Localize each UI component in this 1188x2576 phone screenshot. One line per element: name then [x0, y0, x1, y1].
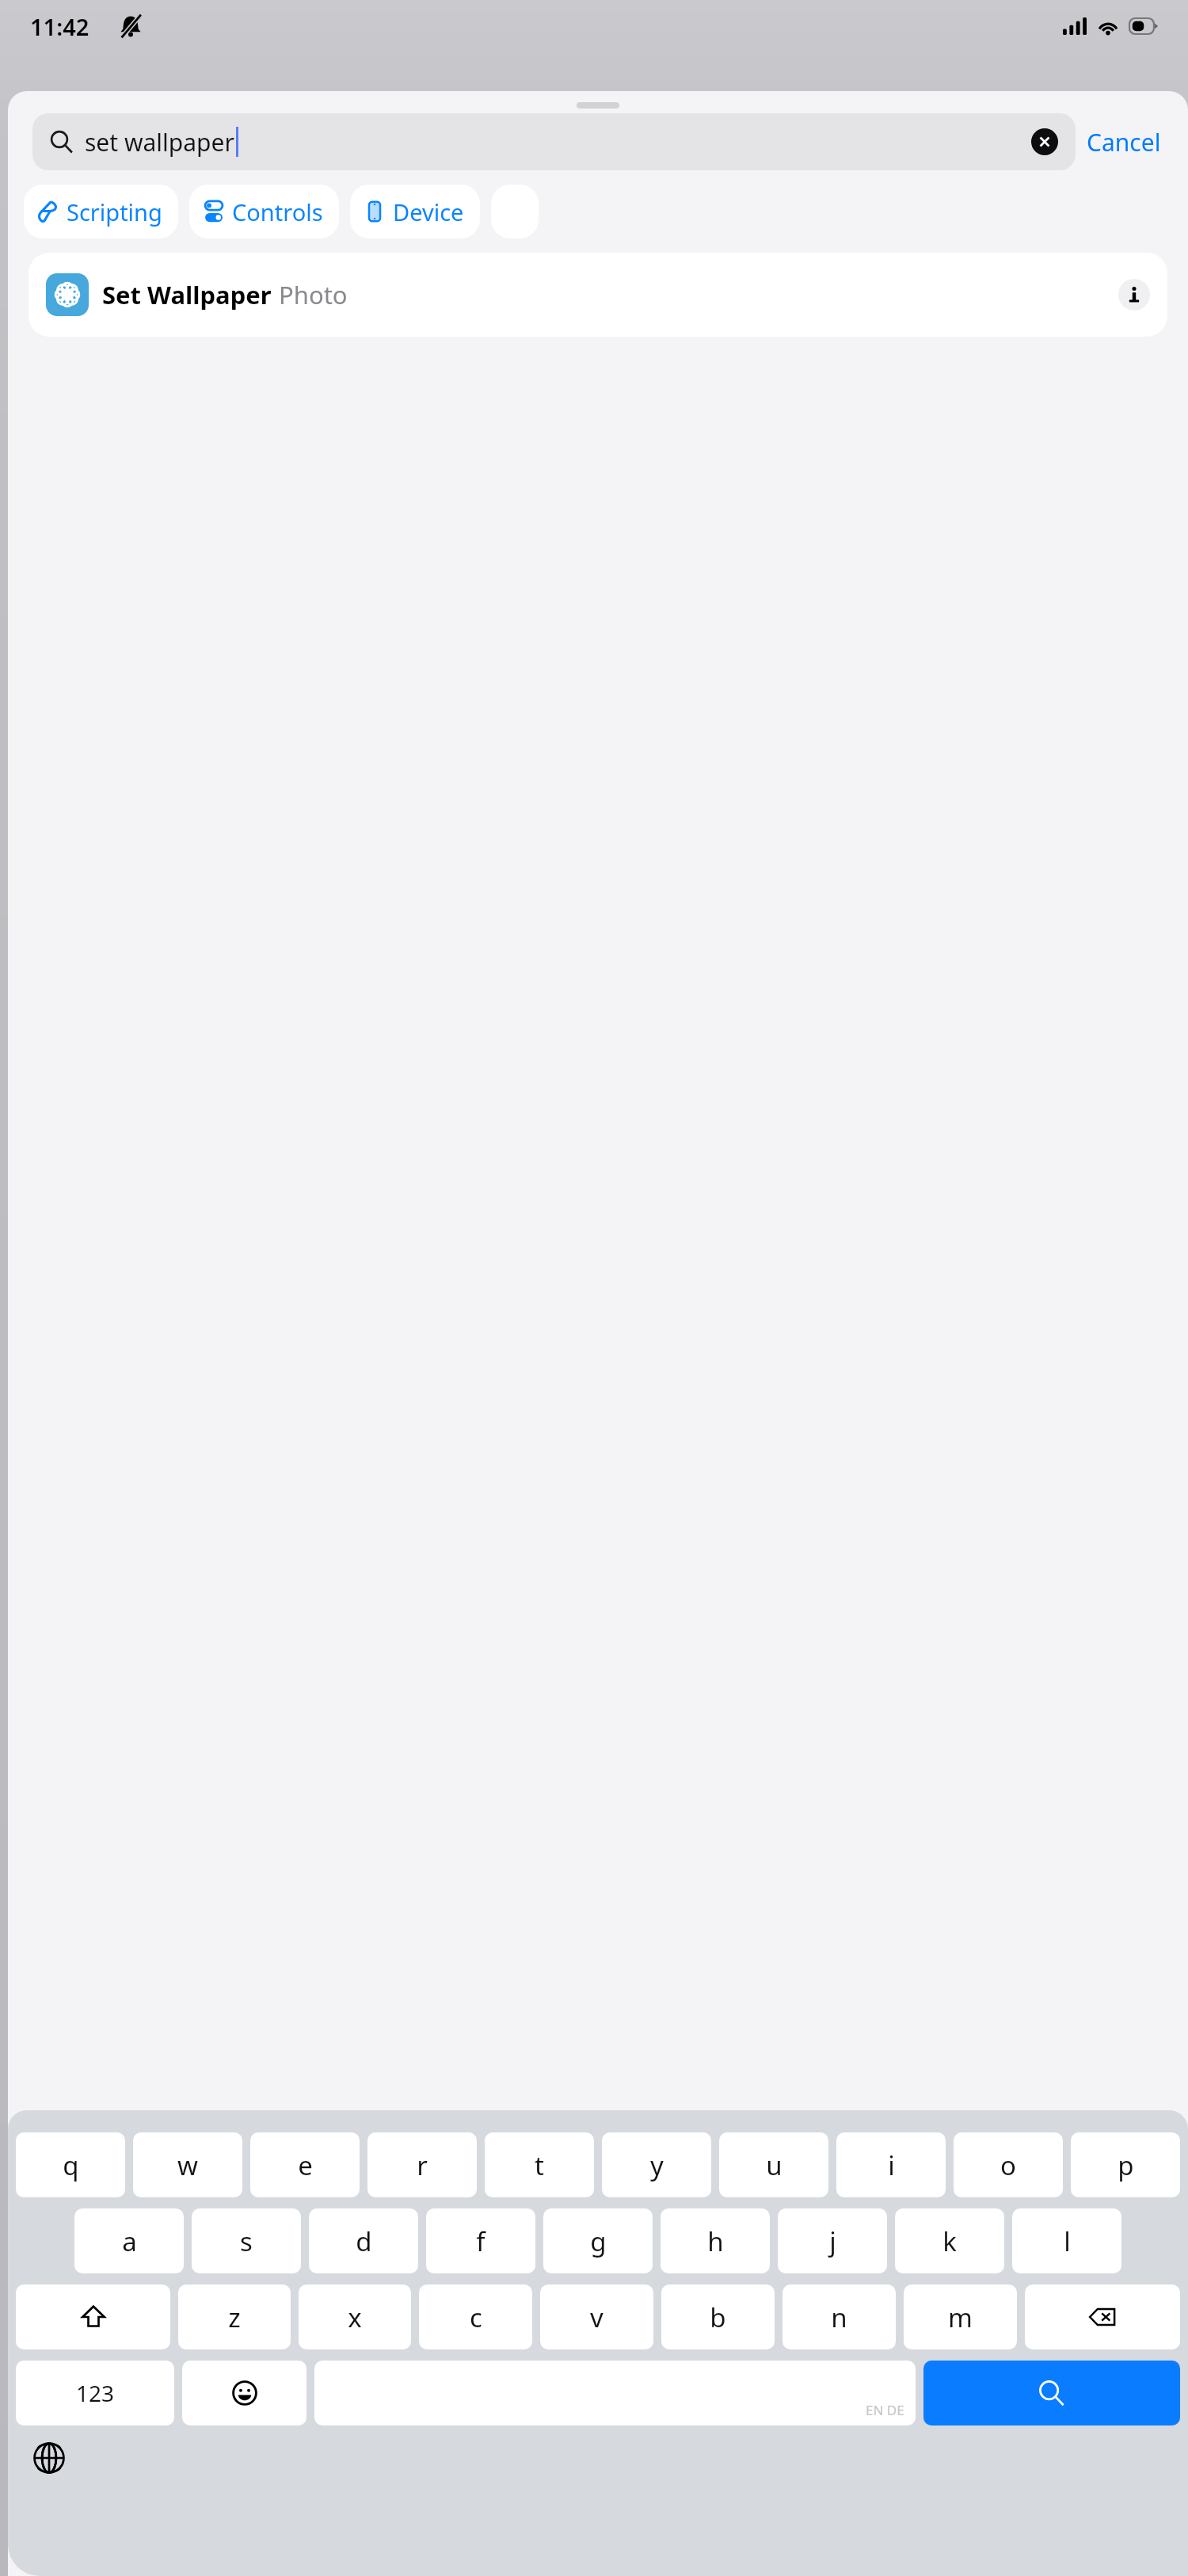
button[interactable]: set wallpaper: [32, 113, 1076, 170]
button[interactable]: Clear text: [1031, 128, 1058, 155]
staticText: e: [298, 2147, 313, 2183]
button[interactable]: e: [250, 2132, 360, 2197]
staticText: Scripting: [67, 196, 162, 227]
button[interactable]: n: [782, 2284, 896, 2349]
button[interactable]: y: [602, 2132, 711, 2197]
button[interactable]: Shift: [16, 2284, 170, 2349]
staticText: r: [417, 2147, 428, 2183]
button[interactable]: Search: [923, 2361, 1180, 2425]
button[interactable]: Change keyboard language: [28, 2437, 70, 2479]
staticText: 123: [76, 2378, 115, 2408]
staticText: p: [1118, 2147, 1134, 2183]
button[interactable]: c: [419, 2284, 532, 2349]
staticText: n: [831, 2300, 847, 2335]
button[interactable]: Set Wallpaper: [29, 253, 1167, 337]
staticText: i: [888, 2147, 895, 2183]
button[interactable]: w: [133, 2132, 242, 2197]
button[interactable]: s: [192, 2208, 301, 2273]
button[interactable]: Scripting: [24, 185, 178, 238]
staticText: a: [122, 2224, 137, 2259]
button[interactable]: k: [895, 2208, 1004, 2273]
staticText: w: [177, 2147, 198, 2183]
staticText: 11:42: [30, 11, 89, 42]
staticText: Set Wallpaper: [102, 278, 272, 311]
button[interactable]: [491, 185, 539, 238]
staticText: q: [63, 2147, 79, 2183]
staticText: u: [766, 2147, 782, 2183]
button[interactable]: Controls: [189, 185, 339, 238]
staticText: f: [476, 2224, 485, 2259]
button[interactable]: x: [299, 2284, 411, 2349]
button[interactable]: j: [778, 2208, 887, 2273]
button[interactable]: v: [540, 2284, 653, 2349]
staticText: t: [535, 2147, 544, 2183]
button[interactable]: z: [178, 2284, 291, 2349]
button[interactable]: b: [661, 2284, 775, 2349]
button[interactable]: Emoji: [182, 2361, 307, 2425]
button[interactable]: Backspace: [1025, 2284, 1180, 2349]
staticText: Cancel: [1087, 126, 1161, 158]
button[interactable]: Cancel: [1076, 118, 1172, 166]
staticText: x: [348, 2300, 362, 2335]
staticText: Controls: [232, 196, 323, 227]
staticText: k: [942, 2224, 957, 2259]
staticText: h: [707, 2224, 724, 2259]
button[interactable]: EN DE: [314, 2361, 916, 2425]
button[interactable]: r: [367, 2132, 477, 2197]
staticText: m: [948, 2300, 973, 2335]
button[interactable]: o: [954, 2132, 1063, 2197]
button[interactable]: l: [1012, 2208, 1121, 2273]
staticText: Photo: [279, 278, 348, 311]
button[interactable]: 123: [16, 2361, 174, 2425]
staticText: g: [590, 2224, 607, 2259]
button[interactable]: q: [16, 2132, 125, 2197]
staticText: b: [710, 2300, 726, 2335]
staticText: y: [650, 2147, 664, 2183]
staticText: d: [356, 2224, 372, 2259]
button[interactable]: h: [661, 2208, 770, 2273]
staticText: Device: [393, 196, 464, 227]
button[interactable]: Info: [1118, 279, 1150, 311]
button[interactable]: u: [719, 2132, 828, 2197]
staticText: o: [1000, 2147, 1016, 2183]
staticText: c: [470, 2300, 482, 2335]
button[interactable]: a: [74, 2208, 184, 2273]
button[interactable]: Device: [350, 185, 480, 238]
button[interactable]: m: [904, 2284, 1017, 2349]
button[interactable]: d: [309, 2208, 418, 2273]
staticText: j: [829, 2224, 836, 2259]
staticText: s: [240, 2224, 253, 2259]
button[interactable]: t: [485, 2132, 594, 2197]
staticText: v: [590, 2300, 604, 2335]
staticText: EN DE: [866, 2401, 904, 2419]
button[interactable]: i: [836, 2132, 946, 2197]
staticText: z: [228, 2300, 241, 2335]
staticText: set wallpaper: [85, 126, 234, 158]
button[interactable]: p: [1071, 2132, 1180, 2197]
button[interactable]: f: [426, 2208, 535, 2273]
staticText: l: [1064, 2224, 1071, 2259]
button[interactable]: g: [543, 2208, 653, 2273]
